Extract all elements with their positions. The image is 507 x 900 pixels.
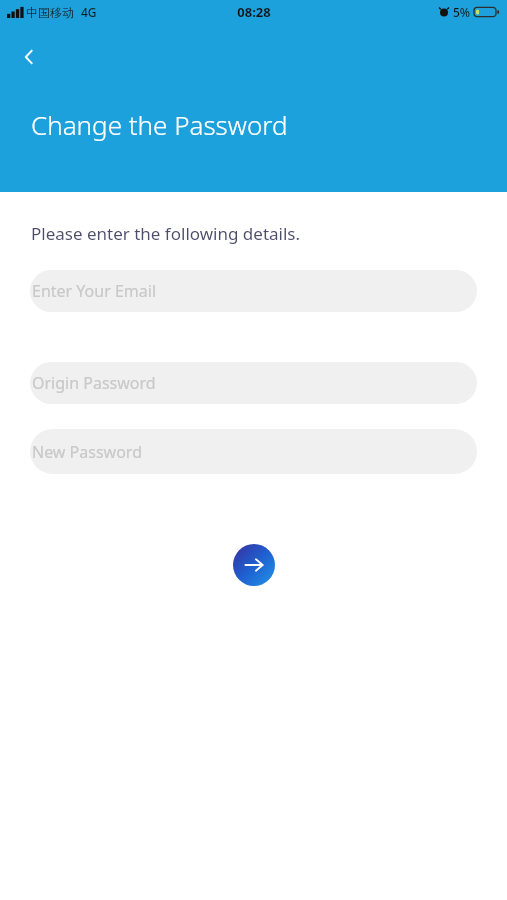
button[interactable]: Back	[8, 36, 50, 78]
staticText: 08:28	[237, 3, 271, 21]
button[interactable]: Submit	[233, 544, 275, 586]
button[interactable]: Origin Password	[30, 362, 477, 404]
staticText: 中国移动	[26, 5, 74, 20]
staticText: Origin Password	[32, 372, 156, 394]
staticText: 4G	[81, 4, 97, 20]
staticText: Please enter the following details.	[31, 222, 301, 245]
staticText: 5%	[453, 4, 471, 20]
staticText: Enter Your Email	[32, 280, 157, 302]
staticText: Change the Password	[31, 107, 288, 142]
button[interactable]: Enter Your Email	[30, 270, 477, 312]
button[interactable]: New Password	[30, 429, 477, 474]
staticText: New Password	[32, 441, 142, 463]
